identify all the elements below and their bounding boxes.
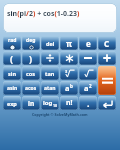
button[interactable]: sin [3,66,21,80]
staticText: ln [28,99,35,108]
staticText: e [86,38,91,49]
staticText: n! [66,98,73,108]
button[interactable]: exp [3,96,21,110]
button[interactable]: ( [3,51,21,65]
button[interactable]: Divide [41,51,59,65]
staticText: 10 [53,103,58,108]
staticText: exp [7,100,17,107]
button[interactable]: n! [60,96,78,110]
button[interactable]: asin [3,81,21,95]
staticText: Copyright © SolveMyMath.com [32,112,88,117]
button[interactable]: tan [41,66,59,80]
staticText: del [46,40,55,47]
button[interactable]: Square root [79,66,97,80]
button[interactable]: Equals [98,66,116,95]
staticText: 3 [65,69,68,74]
button[interactable]: atan [41,81,59,95]
staticText: log [43,99,53,107]
staticText: sin [8,70,16,77]
button[interactable]: Plus [98,51,116,65]
button[interactable]: Cube root [60,66,78,80]
button[interactable]: cos [22,66,40,80]
staticText: a [84,83,89,93]
staticText: atan [44,85,56,92]
button[interactable]: e [79,36,97,50]
button[interactable]: sin(pi/2) + cos(1-0.23) [3,3,117,33]
staticText: a [65,83,70,93]
button[interactable]: Minus [79,51,97,65]
staticText: 2 [89,83,92,89]
staticText: C [104,38,110,49]
button[interactable]: rad [3,36,21,50]
button[interactable]: a to the power of b [60,81,78,95]
button[interactable]: deg [22,36,40,50]
staticText: . [87,97,90,109]
button[interactable]: Multiply [60,51,78,65]
button[interactable]: . [79,96,97,110]
staticText: ( [10,52,14,64]
button[interactable]: a to the power of 2 [79,81,97,95]
staticText: tan [45,70,55,77]
staticText: b [70,83,73,89]
staticText: sin(pi/2) + cos(1-0.23) [7,9,80,19]
staticText: asin [7,85,18,92]
staticText: rad [8,37,17,44]
staticText: acos [25,85,37,92]
button[interactable]: ln [22,96,40,110]
button[interactable]: acos [22,81,40,95]
staticText: π [66,38,72,49]
button[interactable]: ) [22,51,40,65]
button[interactable]: C [98,36,116,50]
button[interactable]: π [60,36,78,50]
button[interactable]: del [41,36,59,50]
button[interactable]: log base 10 [41,96,59,110]
staticText: cos [26,70,36,77]
staticText: deg [26,37,36,44]
button[interactable]: Enter [98,96,116,110]
staticText: ) [29,52,33,64]
